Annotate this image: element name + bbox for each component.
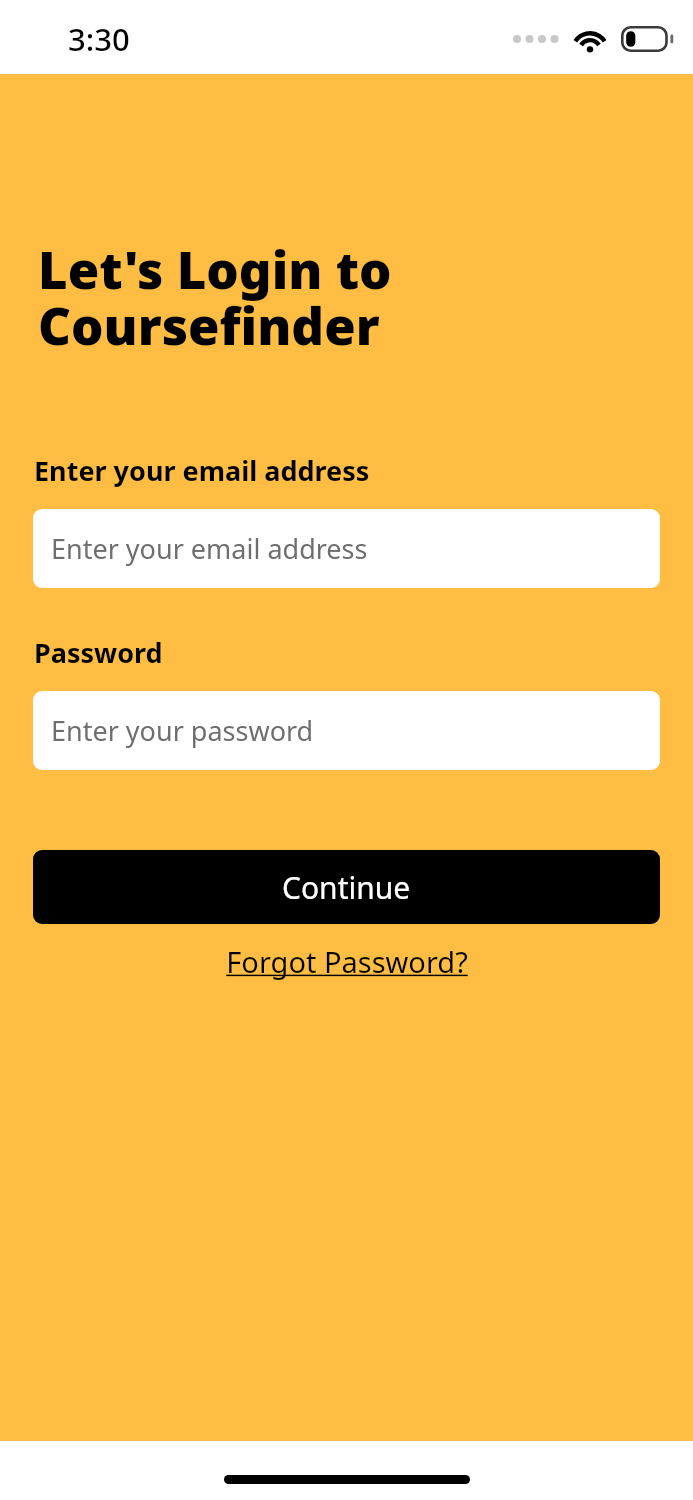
button[interactable]: Enter your password	[33, 691, 660, 770]
staticText: Enter your password	[51, 712, 314, 749]
staticText: 3:30	[68, 18, 130, 60]
staticText: Forgot Password?	[226, 942, 468, 981]
staticText: Password	[34, 634, 163, 671]
button[interactable]: Continue	[33, 850, 660, 924]
button[interactable]: Enter your email address	[33, 509, 660, 588]
staticText: Enter your email address	[51, 530, 368, 567]
staticText: Let's Login to Coursefinder	[38, 234, 673, 360]
button[interactable]: Forgot Password?	[0, 936, 693, 987]
staticText: Enter your email address	[34, 452, 370, 489]
staticText: Continue	[282, 867, 411, 908]
